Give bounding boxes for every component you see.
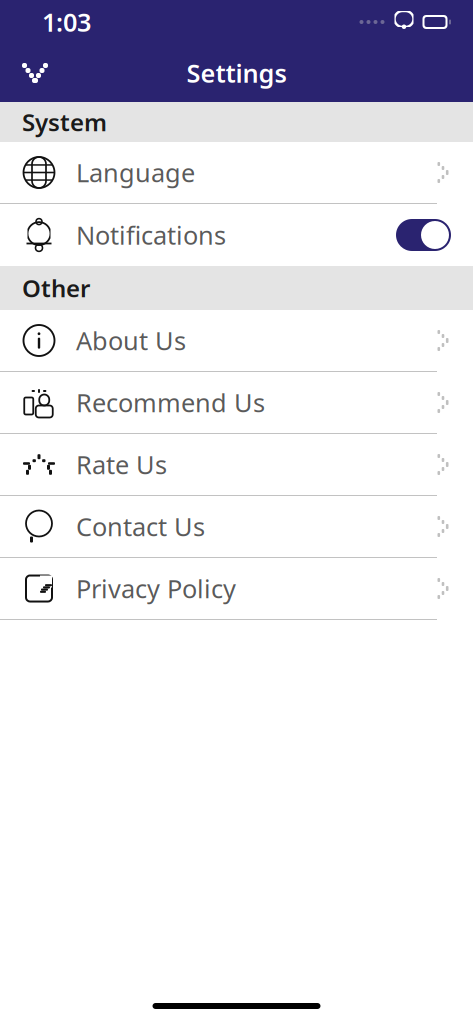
staticText: Recommend Us <box>76 386 265 419</box>
button[interactable]: Rate Us <box>0 434 473 496</box>
button[interactable]: Notifications <box>0 204 473 266</box>
button[interactable]: Privacy Policy <box>0 558 473 620</box>
staticText: Language <box>76 156 195 189</box>
button[interactable]: Collapse <box>13 44 57 102</box>
staticText: System <box>22 106 107 138</box>
staticText: 1:03 <box>42 5 91 39</box>
button[interactable]: About Us <box>0 310 473 372</box>
staticText: Rate Us <box>76 448 167 481</box>
staticText: Privacy Policy <box>76 572 236 605</box>
button[interactable]: Language <box>0 142 473 204</box>
button[interactable]: Recommend Us <box>0 372 473 434</box>
staticText: Settings <box>186 56 286 90</box>
staticText: About Us <box>76 324 186 357</box>
button[interactable]: Contact Us <box>0 496 473 558</box>
staticText: Notifications <box>76 218 226 252</box>
staticText: Other <box>22 272 90 304</box>
staticText: Contact Us <box>76 510 205 543</box>
